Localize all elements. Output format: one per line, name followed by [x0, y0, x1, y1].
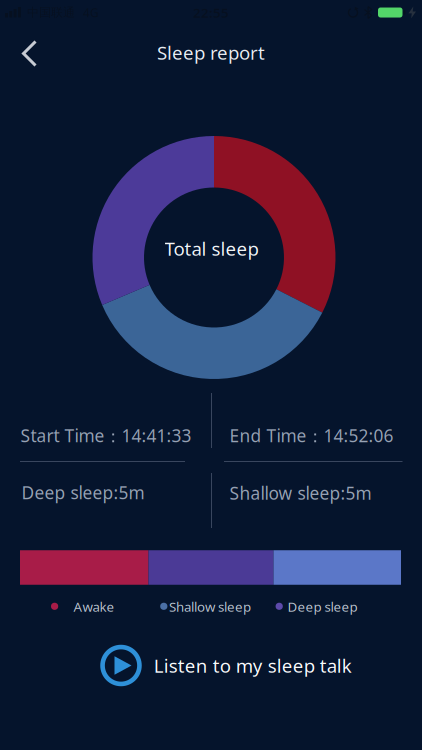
staticText: 22:55	[193, 4, 229, 21]
staticText: Shallow sleep	[169, 598, 251, 615]
staticText: Awake	[73, 598, 114, 615]
staticText: Total sleep	[164, 236, 258, 261]
staticText: Listen to my sleep talk	[154, 653, 352, 678]
staticText: Sleep report	[157, 40, 265, 65]
button[interactable]: Listen to my sleep talk	[100, 645, 352, 686]
staticText: Deep sleep	[287, 598, 357, 615]
staticText: Start Time：14:41:33	[20, 424, 191, 447]
staticText: Shallow sleep:5m	[229, 481, 371, 504]
staticText: 4G	[83, 4, 99, 20]
button[interactable]: Back	[13, 31, 57, 75]
staticText: 中国联通	[27, 5, 75, 20]
staticText: Deep sleep:5m	[21, 481, 144, 504]
staticText: End Time：14:52:06	[229, 424, 393, 447]
